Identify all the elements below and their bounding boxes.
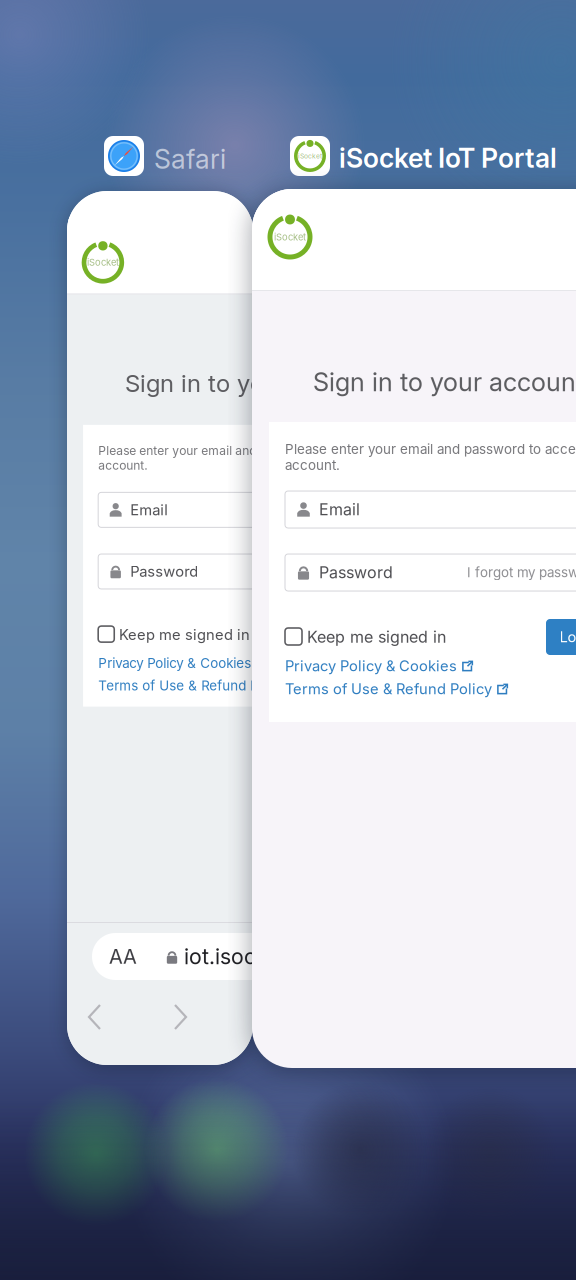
staticText: Password xyxy=(130,563,198,580)
staticText: Sign in to your account xyxy=(125,369,383,398)
staticText: Sign in to your account xyxy=(313,367,576,397)
staticText: Please enter your email and password to … xyxy=(98,443,399,472)
staticText: Privacy Policy & Cookies xyxy=(285,657,457,675)
button[interactable]: Terms of Use & Refund Policy xyxy=(285,677,545,701)
staticText: Privacy Policy & Cookies xyxy=(98,655,251,671)
staticText: Password xyxy=(319,563,393,582)
staticText: Email xyxy=(319,500,360,519)
staticText: iSocket xyxy=(87,257,119,268)
button[interactable]: Privacy Policy & Cookies xyxy=(285,654,545,678)
staticText: Keep me signed in xyxy=(119,626,250,643)
staticText: iot.isocketworld.com xyxy=(184,944,392,969)
staticText: Safari xyxy=(154,143,226,175)
button[interactable]: Keep me signed in xyxy=(98,618,278,652)
staticText: Please enter your email and password to … xyxy=(285,441,576,473)
staticText: iSocket xyxy=(274,231,306,243)
button[interactable]: Safari xyxy=(104,134,254,178)
staticText: Terms of Use & Refund Policy xyxy=(98,678,286,694)
staticText: AA xyxy=(109,944,137,969)
button[interactable]: Login xyxy=(546,619,576,655)
staticText: Terms of Use & Refund Policy xyxy=(285,680,492,698)
button[interactable]: Keep me signed in xyxy=(285,619,475,655)
staticText: Login xyxy=(559,628,576,646)
button[interactable]: iSocket xyxy=(290,134,576,178)
button[interactable]: Login xyxy=(347,618,410,652)
staticText: iSocket IoT Portal xyxy=(339,142,557,174)
button[interactable]: Forward xyxy=(171,1001,213,1035)
staticText: Email xyxy=(130,501,168,519)
button[interactable]: Terms of Use & Refund Policy xyxy=(98,674,344,697)
button[interactable]: AA xyxy=(92,933,418,980)
button[interactable]: Privacy Policy & Cookies xyxy=(98,652,344,674)
button[interactable]: Back xyxy=(85,1001,127,1035)
staticText: Login xyxy=(361,626,396,643)
staticText: I forgot my password xyxy=(467,564,576,580)
staticText: iSocket xyxy=(298,152,322,160)
staticText: Keep me signed in xyxy=(307,627,446,647)
staticText: I forgot my password xyxy=(282,564,398,579)
